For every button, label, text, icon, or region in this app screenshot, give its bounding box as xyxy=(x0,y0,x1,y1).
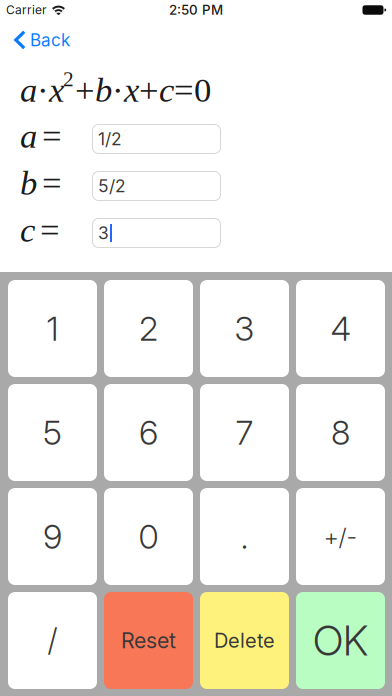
staticText: = xyxy=(174,71,194,109)
staticText: 5 xyxy=(43,412,62,453)
button[interactable]: 6 xyxy=(104,384,193,481)
staticText: c xyxy=(20,211,35,249)
staticText: 1/2 xyxy=(98,128,122,149)
staticText: Delete xyxy=(214,628,275,653)
button[interactable]: 3 xyxy=(200,280,289,377)
staticText: = xyxy=(42,117,62,155)
staticText: 2 xyxy=(139,308,158,349)
button[interactable]: Reset xyxy=(104,592,193,689)
staticText: x xyxy=(49,71,64,109)
staticText: / xyxy=(47,622,57,659)
button[interactable]: 0 xyxy=(104,488,193,585)
button[interactable]: 4 xyxy=(296,280,385,377)
button[interactable]: 1/2 xyxy=(92,124,221,154)
button[interactable]: 2 xyxy=(104,280,193,377)
staticText: b xyxy=(95,71,112,109)
button[interactable]: Back xyxy=(14,30,70,50)
staticText: a xyxy=(20,71,37,109)
button[interactable]: 1 xyxy=(8,280,97,377)
staticText: b xyxy=(20,164,37,202)
button[interactable]: 5 xyxy=(8,384,97,481)
staticText: OK xyxy=(313,615,368,665)
staticText: = xyxy=(40,211,60,249)
staticText: . xyxy=(240,516,248,557)
button[interactable]: 9 xyxy=(8,488,97,585)
staticText: 3 xyxy=(234,308,254,349)
staticText: 2 xyxy=(63,67,74,91)
staticText: 5/2 xyxy=(98,175,126,196)
staticText: Reset xyxy=(121,628,176,653)
button[interactable]: +/- xyxy=(296,488,385,585)
button[interactable]: . xyxy=(200,488,289,585)
staticText: Carrier xyxy=(6,3,47,17)
staticText: 7 xyxy=(235,412,253,453)
staticText: · xyxy=(112,71,124,109)
staticText: 3 xyxy=(98,222,109,243)
staticText: a xyxy=(20,117,37,155)
staticText: +/- xyxy=(323,522,357,551)
button[interactable]: 8 xyxy=(296,384,385,481)
staticText: 6 xyxy=(139,412,158,453)
button[interactable]: 3 xyxy=(92,218,221,248)
button[interactable]: Delete xyxy=(200,592,289,689)
staticText: + xyxy=(75,71,95,109)
staticText: 0 xyxy=(194,71,211,109)
staticText: 4 xyxy=(330,308,350,349)
button[interactable]: OK xyxy=(296,592,385,689)
staticText: Back xyxy=(30,30,70,50)
staticText: · xyxy=(37,71,49,109)
staticText: 8 xyxy=(331,412,350,453)
staticText: 1 xyxy=(46,308,58,349)
staticText: 9 xyxy=(43,516,62,557)
staticText: 0 xyxy=(138,516,158,557)
button[interactable]: / xyxy=(8,592,97,689)
staticText: 2:50 PM xyxy=(169,2,223,18)
staticText: = xyxy=(42,164,62,202)
staticText: + xyxy=(139,71,159,109)
staticText: x xyxy=(124,71,139,109)
button[interactable]: 5/2 xyxy=(92,171,221,201)
staticText: c xyxy=(159,71,174,109)
button[interactable]: 7 xyxy=(200,384,289,481)
